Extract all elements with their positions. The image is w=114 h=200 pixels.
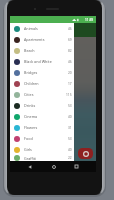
- staticText: Flowers: [24, 125, 68, 130]
- staticText: 17: [68, 82, 72, 86]
- staticText: Black and White: [24, 59, 68, 64]
- staticText: Cities: [24, 92, 66, 97]
- button[interactable]: Black and White: [10, 56, 74, 67]
- staticText: 20: [68, 71, 72, 75]
- button[interactable]: Food: [10, 133, 74, 144]
- button[interactable]: Graffiti: [10, 155, 74, 161]
- button[interactable]: Drinks: [10, 100, 74, 111]
- button[interactable]: Flowers: [10, 122, 74, 133]
- staticText: Beach: [24, 48, 68, 53]
- button[interactable]: Home: [49, 162, 58, 171]
- staticText: Cinema: [24, 114, 68, 119]
- button[interactable]: Animals: [10, 23, 74, 34]
- button[interactable]: Shuffle: [78, 148, 93, 159]
- button[interactable]: Cinema: [10, 111, 74, 122]
- staticText: 82: [68, 49, 72, 53]
- staticText: Apartments: [24, 37, 68, 42]
- button[interactable]: Recents: [72, 162, 81, 171]
- staticText: Graffiti: [24, 156, 68, 161]
- button[interactable]: Girls: [10, 144, 74, 155]
- button[interactable]: Back: [25, 162, 34, 171]
- staticText: 69: [68, 38, 72, 42]
- staticText: 40: [68, 115, 72, 119]
- staticText: Drinks: [24, 103, 68, 108]
- button[interactable]: Children: [10, 78, 74, 89]
- staticText: 115: [66, 93, 72, 97]
- staticText: 11:39: [85, 18, 94, 22]
- staticText: 40: [68, 148, 72, 152]
- staticText: 46: [68, 27, 72, 31]
- staticText: 53: [68, 104, 72, 108]
- staticText: 22: [68, 156, 72, 160]
- staticText: Food: [24, 136, 68, 141]
- staticText: 46: [68, 60, 72, 64]
- staticText: Bridges: [24, 70, 68, 75]
- staticText: Animals: [24, 26, 68, 31]
- button[interactable]: Apartments: [10, 34, 74, 45]
- button[interactable]: Bridges: [10, 67, 74, 78]
- button[interactable]: Cities: [10, 89, 74, 100]
- staticText: 31: [68, 126, 72, 130]
- staticText: Girls: [24, 147, 68, 152]
- button[interactable]: Beach: [10, 45, 74, 56]
- staticText: Children: [24, 81, 68, 86]
- staticText: 53: [68, 137, 72, 141]
